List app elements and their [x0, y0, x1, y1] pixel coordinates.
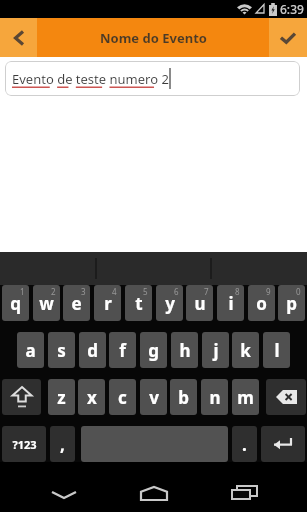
staticText: 0 [296, 286, 301, 297]
staticText: , [60, 433, 65, 456]
staticText: Evento de teste numero 2 [12, 70, 169, 88]
button[interactable]: k [232, 332, 259, 368]
button[interactable]: x [78, 379, 105, 415]
staticText: 3 [81, 286, 86, 297]
staticText: o [256, 292, 267, 315]
button[interactable]: f [109, 332, 136, 368]
button[interactable]: t [125, 285, 152, 321]
button[interactable] [266, 379, 306, 415]
button[interactable]: i [217, 285, 244, 321]
button[interactable]: c [109, 379, 136, 415]
button[interactable]: , [50, 426, 75, 462]
staticText: 2 [51, 286, 56, 297]
button[interactable]: h [171, 332, 198, 368]
button[interactable]: e [63, 285, 90, 321]
button[interactable]: a [17, 332, 44, 368]
staticText: u [194, 292, 206, 315]
staticText: 1 [20, 286, 25, 297]
button[interactable]: . [232, 426, 257, 462]
button[interactable]: z [48, 379, 75, 415]
button[interactable]: o [248, 285, 275, 321]
staticText: d [87, 339, 98, 362]
staticText: t [135, 292, 143, 315]
staticText: 9 [266, 286, 271, 297]
staticText: c [118, 386, 127, 409]
staticText: w [39, 292, 54, 315]
staticText: 8 [235, 286, 240, 297]
staticText: . [242, 433, 247, 456]
staticText: 6 [174, 286, 179, 297]
button[interactable]: r [94, 285, 121, 321]
button[interactable]: j [202, 332, 229, 368]
button[interactable]: v [140, 379, 167, 415]
staticText: f [119, 339, 126, 362]
staticText: p [286, 292, 297, 315]
staticText: s [57, 339, 66, 362]
button[interactable]: u [186, 285, 213, 321]
staticText: x [87, 386, 97, 409]
button[interactable]: y [156, 285, 183, 321]
button[interactable]: ?123 [2, 426, 46, 462]
staticText: k [240, 339, 251, 362]
button[interactable] [220, 479, 268, 507]
button[interactable]: w [33, 285, 60, 321]
staticText: i [228, 292, 234, 315]
button[interactable]: Evento de teste numero 2 [5, 61, 300, 96]
button[interactable]: l [263, 332, 290, 368]
staticText: y [165, 292, 175, 315]
button[interactable] [2, 379, 41, 415]
button[interactable]: s [48, 332, 75, 368]
button[interactable] [40, 483, 88, 507]
staticText: e [71, 292, 82, 315]
button[interactable] [261, 426, 305, 462]
staticText: z [57, 386, 66, 409]
staticText: r [104, 292, 112, 315]
staticText: n [209, 386, 221, 409]
button[interactable]: b [170, 379, 197, 415]
button[interactable]: q [2, 285, 29, 321]
staticText: h [179, 339, 191, 362]
button[interactable]: m [232, 379, 259, 415]
button[interactable] [269, 18, 307, 57]
button[interactable]: g [140, 332, 167, 368]
staticText: m [237, 386, 254, 409]
button[interactable] [0, 18, 37, 57]
staticText: l [274, 339, 280, 362]
staticText: j [213, 339, 219, 362]
button[interactable]: n [201, 379, 228, 415]
staticText: 6:39 [280, 1, 304, 17]
button[interactable]: d [79, 332, 106, 368]
staticText: Nome do Evento [100, 29, 207, 47]
staticText: 4 [112, 286, 117, 297]
staticText: v [149, 386, 159, 409]
staticText: b [178, 386, 189, 409]
staticText: 5 [143, 286, 148, 297]
staticText: a [25, 339, 36, 362]
staticText: 7 [204, 286, 209, 297]
staticText: q [10, 292, 21, 315]
staticText: g [148, 339, 159, 362]
button[interactable]: p [278, 285, 305, 321]
staticText: ?123 [12, 437, 37, 452]
button[interactable] [130, 479, 178, 507]
